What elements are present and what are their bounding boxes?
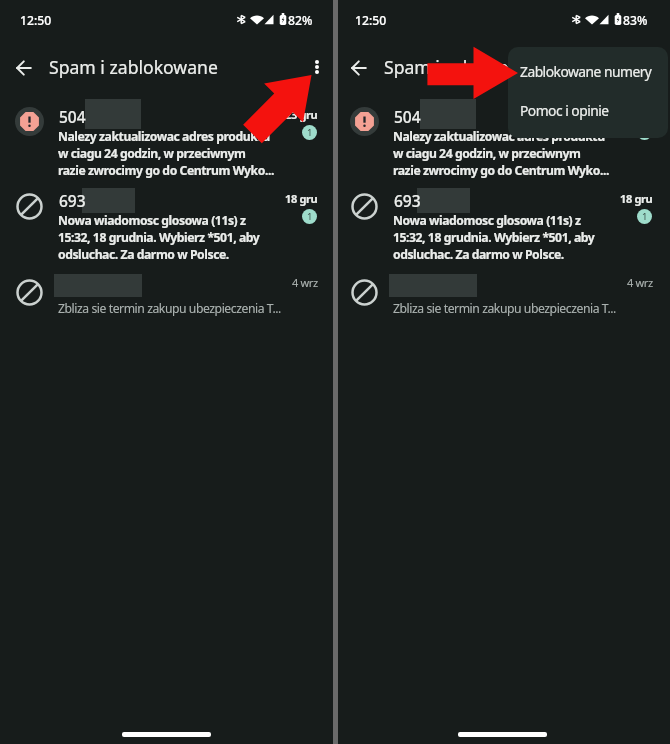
- staticText: Zbliza sie termin zakupu ubezpieczenia T…: [58, 300, 281, 317]
- staticText: Nalezy zaktualizowac adres produktu: [58, 128, 270, 145]
- staticText: 693: [59, 190, 86, 211]
- staticText: Zbliza sie termin zakupu ubezpieczenia T…: [393, 300, 616, 317]
- staticText: odsluchac. Za darmo w Polsce.: [393, 246, 564, 263]
- staticText: 15:32, 18 grudnia. Wybierz *501, aby: [58, 229, 260, 246]
- staticText: 15:32, 18 grudnia. Wybierz *501, aby: [393, 229, 595, 246]
- staticText: Nowa wiadomosc glosowa (11s) z: [393, 212, 581, 229]
- button[interactable]: Back: [0, 44, 47, 91]
- button[interactable]: Zbliza sie termin zakupu ubezpieczenia T…: [335, 264, 670, 348]
- staticText: 1: [642, 126, 648, 139]
- staticText: 12:50: [355, 12, 387, 29]
- button[interactable]: 504: [0, 96, 333, 180]
- staticText: 1: [642, 210, 648, 223]
- staticText: w ciagu 24 godzin, w przeciwnym: [58, 145, 246, 162]
- staticText: odsluchac. Za darmo w Polsce.: [58, 246, 229, 263]
- button[interactable]: More options: [297, 47, 337, 87]
- staticText: Zablokowane numery: [520, 62, 652, 81]
- staticText: Nowa wiadomosc glosowa (11s) z: [58, 212, 246, 229]
- staticText: 82%: [288, 12, 313, 29]
- button[interactable]: 693: [335, 180, 670, 264]
- staticText: 504: [394, 106, 421, 127]
- button[interactable]: More options: [632, 47, 670, 87]
- staticText: 18 gru: [620, 191, 653, 206]
- staticText: Spam i zablokowane: [384, 55, 553, 79]
- staticText: Spam i zablokowane: [49, 55, 218, 79]
- staticText: Pomoc i opinie: [520, 101, 609, 120]
- button[interactable]: Pomoc i opinie: [508, 88, 668, 133]
- button[interactable]: Back: [335, 44, 382, 91]
- staticText: Nalezy zaktualizowac adres produktu: [393, 128, 605, 145]
- staticText: 1: [307, 210, 313, 223]
- staticText: 83%: [623, 12, 648, 29]
- button[interactable]: Zablokowane numery: [508, 49, 668, 94]
- staticText: razie zwrocimy go do Centrum Wyko...: [58, 162, 274, 179]
- staticText: 23 gru: [285, 107, 318, 122]
- staticText: 12:50: [20, 12, 52, 29]
- staticText: 18 gru: [285, 191, 318, 206]
- staticText: w ciagu 24 godzin, w przeciwnym: [393, 145, 581, 162]
- staticText: 4 wrz: [627, 275, 653, 290]
- staticText: 1: [307, 126, 313, 139]
- button[interactable]: 693: [0, 180, 333, 264]
- staticText: 693: [394, 190, 421, 211]
- button[interactable]: Zbliza sie termin zakupu ubezpieczenia T…: [0, 264, 333, 348]
- staticText: 4 wrz: [292, 275, 318, 290]
- staticText: 504: [59, 106, 86, 127]
- staticText: razie zwrocimy go do Centrum Wyko...: [393, 162, 609, 179]
- button[interactable]: 504: [335, 96, 670, 180]
